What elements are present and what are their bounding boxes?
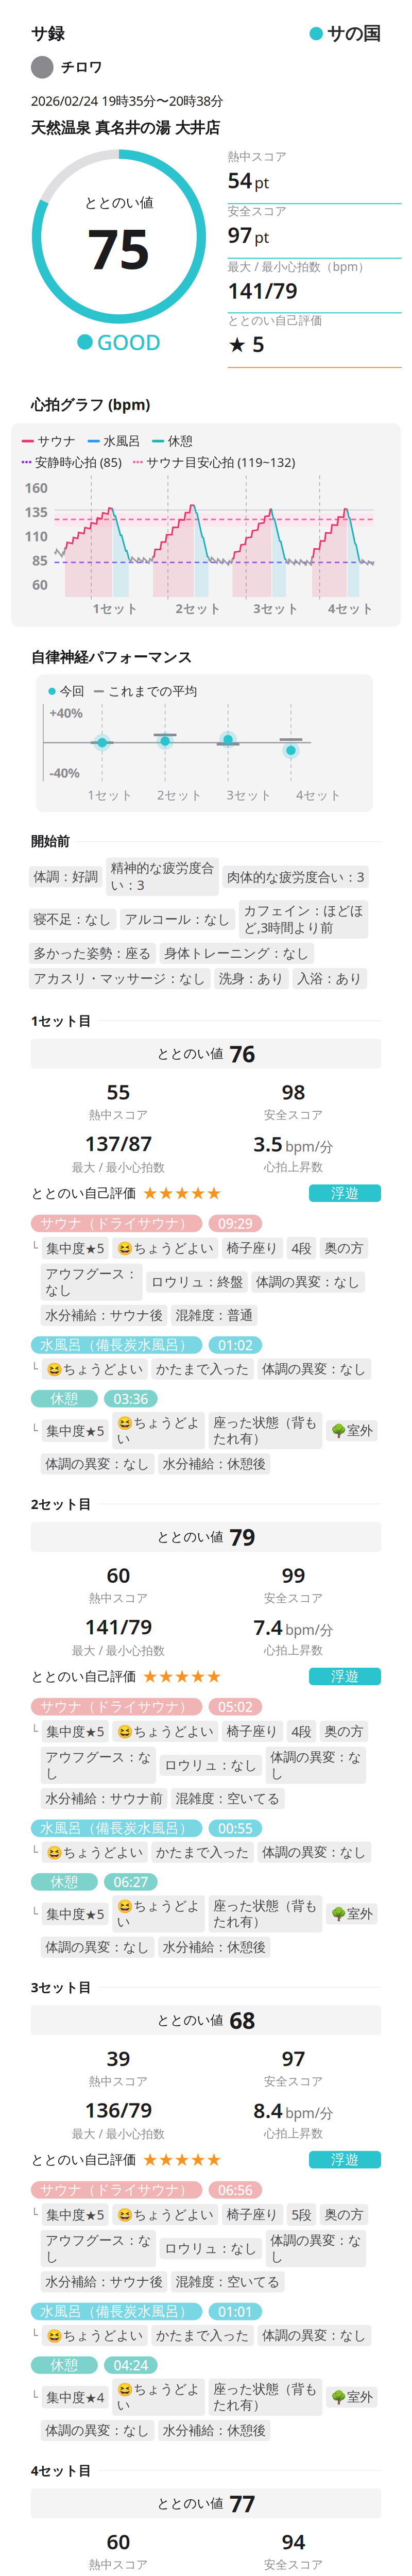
staticText: 4段 — [291, 1723, 312, 1740]
staticText: └ — [31, 1725, 38, 1738]
staticText: 入浴：あり — [297, 971, 363, 987]
staticText: 😆ちょうどよい — [117, 2207, 214, 2223]
staticText: 集中度★5 — [46, 1905, 104, 1923]
staticText: 97 — [282, 2044, 305, 2072]
staticText: 😆ちょうどよい — [117, 1723, 214, 1739]
staticText: GOOD — [97, 328, 161, 356]
staticText: 体調の異変：なし — [256, 1274, 360, 1290]
staticText: アウフグース：なし — [45, 1749, 151, 1781]
staticText: 😆ちょうどよい — [117, 1240, 214, 1256]
staticText: 94 — [282, 2528, 305, 2555]
staticText: 安全スコア — [264, 1591, 323, 1605]
staticText: └ — [31, 1362, 38, 1376]
staticText: かたまで入った — [156, 1844, 249, 1860]
staticText: 06:27 — [114, 1873, 148, 1891]
staticText: └ — [31, 1907, 38, 1921]
staticText: 浮遊 — [331, 1668, 359, 1685]
staticText: サの国 — [327, 23, 381, 45]
staticText: 心拍上昇数 — [264, 1160, 323, 1174]
staticText: 水分補給：休憩後 — [163, 1939, 266, 1955]
staticText: 3.5 — [253, 1130, 283, 1157]
staticText: 椅子座り — [227, 2207, 279, 2223]
staticText: 最大 / 最小心拍数 — [72, 1643, 165, 1658]
staticText: 洗身：あり — [219, 971, 284, 987]
staticText: 1セット目 — [31, 1012, 91, 1029]
staticText: 水分補給：休憩後 — [163, 1456, 266, 1472]
button[interactable]: 浮遊 — [309, 2151, 381, 2168]
staticText: 55 — [107, 1078, 130, 1105]
staticText: 体調の異変：なし — [45, 1939, 150, 1955]
staticText: かたまで入った — [156, 2327, 249, 2343]
staticText: 今回 — [60, 684, 84, 699]
staticText: bpm/分 — [285, 1137, 334, 1156]
staticText: 精神的な疲労度合い：3 — [111, 860, 214, 893]
staticText: 06:56 — [218, 2181, 253, 2199]
staticText: 奥の方 — [324, 1723, 364, 1739]
staticText: 54 — [228, 166, 252, 194]
staticText: 1セット — [93, 600, 139, 617]
staticText: 熱中スコア — [89, 2558, 148, 2572]
staticText: ロウリュ：終盤 — [151, 1274, 243, 1290]
staticText: 3セット — [253, 600, 299, 617]
staticText: 2セット — [157, 786, 203, 803]
staticText: 安全スコア — [264, 2074, 323, 2089]
staticText: └ — [31, 2208, 38, 2221]
staticText: 体調の異変：なし — [270, 2233, 362, 2265]
staticText: アウフグース：なし — [45, 1266, 138, 1298]
staticText: 椅子座り — [227, 1723, 279, 1739]
staticText: 🌳室外 — [331, 1906, 373, 1922]
staticText: 39 — [107, 2044, 130, 2072]
staticText: 最大 / 最小心拍数 — [72, 1159, 165, 1175]
staticText: サウナ（ドライサウナ） — [40, 1698, 193, 1715]
staticText: 😆ちょうどよい — [117, 1898, 200, 1930]
staticText: 肉体的な疲労度合い：3 — [227, 868, 364, 885]
staticText: ととのい値 — [157, 1529, 223, 1545]
staticText: アルコール：なし — [125, 911, 231, 927]
staticText: 体調：好調 — [33, 869, 98, 885]
staticText: 🌳室外 — [331, 2389, 373, 2405]
button[interactable]: チロワ — [0, 45, 412, 79]
staticText: 137/87 — [85, 1129, 152, 1157]
staticText: 8.4 — [253, 2096, 283, 2124]
staticText: サウナ目安心拍 (119~132) — [146, 454, 295, 470]
staticText: 4セット目 — [31, 2462, 91, 2479]
staticText: 安全スコア — [264, 1108, 323, 1122]
staticText: 4セット — [296, 786, 342, 803]
staticText: 集中度★5 — [46, 1239, 104, 1257]
staticText: ★★★★★ — [142, 1666, 222, 1687]
staticText: 09:29 — [218, 1214, 253, 1233]
staticText: 水分補給：サウナ後 — [45, 2274, 163, 2290]
staticText: 4段 — [291, 1239, 312, 1257]
staticText: 98 — [282, 1078, 305, 1105]
staticText: チロワ — [61, 59, 102, 76]
staticText: 身体トレーニング：なし — [164, 945, 310, 961]
button[interactable]: 浮遊 — [309, 1668, 381, 1685]
staticText: 😆ちょうどよい — [46, 1361, 143, 1377]
button[interactable]: 浮遊 — [309, 1184, 381, 1202]
staticText: ととのい自己評価 — [228, 313, 322, 328]
staticText: ロウリュ：なし — [164, 1757, 257, 1773]
staticText: 😆ちょうどよい — [117, 2381, 200, 2413]
staticText: 天然温泉 真名井の湯 大井店 — [31, 119, 220, 137]
staticText: bpm/分 — [285, 1620, 334, 1639]
staticText: ロウリュ：なし — [164, 2241, 257, 2257]
staticText: 160 — [24, 478, 48, 497]
staticText: └ — [31, 1424, 38, 1437]
staticText: 76 — [229, 1039, 255, 1069]
staticText: 99 — [282, 1561, 305, 1588]
staticText: ととのい自己評価 — [31, 2152, 136, 2168]
staticText: pt — [254, 172, 269, 193]
staticText: bpm/分 — [285, 2104, 334, 2122]
staticText: 多かった姿勢：座る — [33, 945, 151, 961]
staticText: ★★★★★ — [142, 1183, 222, 1203]
staticText: 75 — [88, 211, 150, 284]
staticText: 体調の異変：なし — [45, 2422, 150, 2438]
staticText: 4セット — [328, 600, 374, 617]
staticText: 3セット目 — [31, 1979, 91, 1996]
staticText: 2026/02/24 19時35分〜20時38分 — [31, 92, 224, 109]
staticText: かたまで入った — [156, 1361, 249, 1377]
